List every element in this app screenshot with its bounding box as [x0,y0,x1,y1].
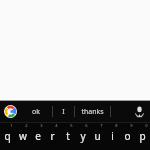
staticText: thanks [81,107,104,117]
button[interactable]: 3 [30,123,45,144]
staticText: y [80,129,86,143]
staticText: 4 [55,123,58,128]
button[interactable]: 8 [105,123,120,144]
staticText: 5 [70,123,73,128]
staticText: 2 [25,123,28,128]
button[interactable]: 1 [0,123,15,144]
staticText: t [66,129,70,143]
staticText: 6 [85,123,88,128]
button[interactable]: 5 [60,123,75,144]
button[interactable]: 6 [75,123,90,144]
staticText: 9 [130,123,133,128]
staticText: e [35,129,41,143]
button[interactable]: 0 [135,123,150,144]
staticText: 7 [100,123,103,128]
staticText: w [19,129,27,143]
staticText: ok [32,107,40,117]
button[interactable]: ok [19,101,52,122]
staticText: o [124,129,131,143]
staticText: 8 [115,123,118,128]
button[interactable]: 9 [120,123,135,144]
staticText: i [111,129,114,143]
button[interactable]: 7 [90,123,105,144]
button[interactable]: 2 [15,123,30,144]
button[interactable]: 4 [45,123,60,144]
button[interactable]: Voice input [131,103,148,120]
staticText: 1 [10,123,13,128]
staticText: p [139,129,146,143]
staticText: u [94,129,101,143]
button[interactable]: Google [3,104,18,119]
button[interactable]: I [53,101,74,122]
staticText: 0 [145,123,148,128]
staticText: q [4,129,11,143]
button[interactable]: thanks [75,101,110,122]
staticText: r [50,129,55,143]
staticText: 3 [40,123,43,128]
staticText: I [62,107,65,117]
